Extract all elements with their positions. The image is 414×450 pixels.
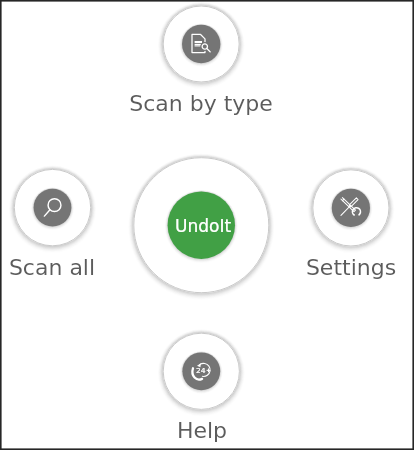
staticText: Scan all [0, 255, 152, 281]
button[interactable]: Scan all [14, 169, 91, 246]
staticText: Settings [251, 255, 414, 281]
button[interactable]: Help [163, 333, 240, 410]
staticText: Scan by type [101, 91, 301, 117]
staticText: UndoIt [175, 216, 232, 236]
button[interactable]: Scan by type [163, 6, 240, 83]
button[interactable]: UndoIt [133, 157, 269, 293]
staticText: 24 [196, 366, 206, 375]
staticText: Help [102, 418, 302, 444]
button[interactable]: Settings [312, 169, 389, 246]
